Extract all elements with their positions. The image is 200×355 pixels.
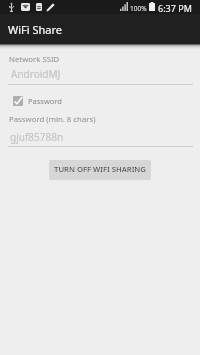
- other: Signal strength: [120, 2, 128, 11]
- button[interactable]: Network SSID: [8, 50, 193, 85]
- other: Battery full: [149, 2, 155, 11]
- button[interactable]: Password: [13, 96, 62, 106]
- staticText: AndroidMJ: [11, 67, 61, 81]
- staticText: Network SSID: [9, 54, 60, 65]
- other: Wi-Fi hotspot: [21, 3, 30, 11]
- staticText: TURN OFF WIFI SHARING: [54, 164, 146, 174]
- staticText: Password (min. 8 chars): [9, 114, 96, 125]
- staticText: gjuf85788n: [10, 130, 64, 144]
- staticText: 6:37 PM: [158, 2, 192, 14]
- button[interactable]: WiFi Share: [0, 14, 200, 44]
- other: USB connected: [9, 3, 14, 12]
- other: Edit: [46, 3, 55, 12]
- button[interactable]: TURN OFF WIFI SHARING: [49, 160, 151, 180]
- other: Storage: [36, 3, 42, 11]
- staticText: WiFi Share: [8, 22, 63, 37]
- button[interactable]: Password (min. 8 chars): [8, 112, 193, 147]
- staticText: Password: [28, 96, 62, 106]
- staticText: 100%: [130, 4, 147, 13]
